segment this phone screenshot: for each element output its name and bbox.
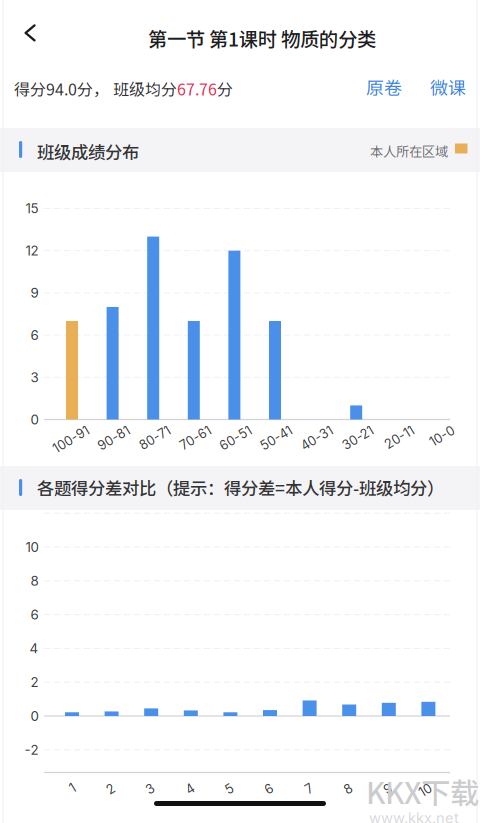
button[interactable]: Back — [12, 16, 48, 50]
staticText: 4 — [187, 784, 195, 800]
staticText: 15 — [25, 200, 38, 216]
staticText: 80-71 — [139, 435, 173, 450]
staticText: 3 — [30, 369, 38, 385]
staticText: 4 — [29, 640, 38, 656]
staticText: 2 — [108, 784, 116, 800]
staticText: 40-31 — [301, 435, 336, 450]
staticText: 70-61 — [180, 435, 214, 450]
staticText: 班级成绩分布 — [37, 139, 139, 164]
staticText: 1 — [71, 784, 76, 800]
staticText: 本人所在区域 — [370, 141, 448, 160]
staticText: www.kkx.net — [369, 809, 459, 823]
staticText: 0 — [30, 411, 38, 428]
staticText: 班级均分 — [109, 77, 177, 100]
staticText: 67.76 — [177, 77, 217, 100]
staticText: 20-11 — [385, 435, 417, 450]
staticText: 7 — [307, 784, 314, 800]
staticText: 6 — [30, 607, 38, 623]
staticText: 3 — [147, 784, 155, 800]
staticText: 50-41 — [260, 435, 295, 450]
staticText: 60-51 — [219, 435, 254, 450]
staticText: 分 — [217, 77, 233, 100]
staticText: 8 — [30, 573, 38, 589]
staticText: 0 — [30, 708, 38, 724]
staticText: 原卷 — [366, 74, 402, 100]
staticText: -2 — [24, 742, 38, 758]
staticText: 100-91 — [52, 435, 92, 450]
staticText: 得分94.0分， — [14, 77, 109, 100]
staticText: KKX下载 — [366, 770, 479, 812]
staticText: 第一节 第1课时 物质的分类 — [148, 24, 376, 52]
staticText: 微课 — [430, 74, 466, 100]
staticText: 90-81 — [98, 435, 133, 450]
button[interactable]: 原卷 — [352, 74, 416, 100]
staticText: 30-21 — [342, 435, 376, 450]
staticText: 12 — [25, 243, 38, 259]
staticText: 各题得分差对比（提示：得分差=本人得分-班级均分） — [37, 475, 444, 500]
button[interactable]: 微课 — [416, 74, 480, 100]
staticText: 10 — [419, 784, 432, 800]
staticText: 8 — [345, 784, 353, 800]
staticText: 2 — [30, 674, 38, 690]
staticText: 9 — [30, 285, 38, 301]
staticText: 10-0 — [430, 435, 457, 450]
staticText: 6 — [30, 327, 38, 343]
staticText: 6 — [266, 784, 274, 800]
staticText: 10 — [25, 539, 38, 555]
staticText: 5 — [226, 784, 234, 800]
staticText: 9 — [385, 784, 393, 800]
